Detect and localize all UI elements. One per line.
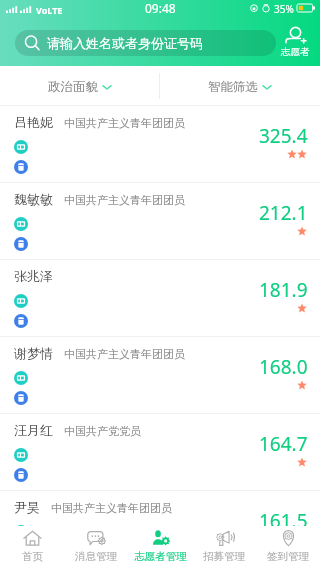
staticText: 请输入姓名或者身份证号码 bbox=[47, 35, 203, 51]
staticText: 164.7 bbox=[259, 431, 308, 457]
button[interactable]: 政治面貌 bbox=[0, 67, 159, 106]
staticText: 中国共产党党员 bbox=[64, 424, 141, 438]
staticText: 招募管理 bbox=[203, 550, 245, 563]
button[interactable]: 魏敏敏 bbox=[0, 183, 320, 260]
staticText: 汪月红 bbox=[14, 422, 53, 438]
staticText: 中国共产主义青年团团员 bbox=[64, 193, 185, 207]
button[interactable]: 吕艳妮 bbox=[0, 106, 320, 183]
button[interactable]: 张兆泽 bbox=[0, 260, 320, 337]
staticText: 志愿者 bbox=[281, 46, 310, 58]
staticText: 181.9 bbox=[259, 277, 308, 303]
button[interactable]: 谢梦情 bbox=[0, 337, 320, 414]
staticText: 签到管理 bbox=[267, 550, 309, 563]
staticText: 09:48 bbox=[145, 0, 176, 16]
staticText: 吕艳妮 bbox=[14, 114, 53, 130]
staticText: 智能筛选 bbox=[208, 79, 258, 95]
staticText: 212.1 bbox=[259, 200, 308, 226]
staticText: 325.4 bbox=[259, 123, 308, 149]
staticText: 161.5 bbox=[259, 508, 308, 534]
staticText: 政治面貌 bbox=[48, 79, 98, 95]
staticText: 中国共产主义青年团团员 bbox=[64, 347, 185, 361]
staticText: 张兆泽 bbox=[14, 268, 53, 284]
button[interactable]: 请输入姓名或者身份证号码 bbox=[15, 30, 276, 56]
staticText: 中国共产主义青年团团员 bbox=[51, 501, 172, 515]
staticText: 谢梦情 bbox=[14, 345, 53, 361]
staticText: VoLTE bbox=[36, 4, 63, 16]
button[interactable]: 尹昊 bbox=[0, 491, 320, 568]
staticText: 首页 bbox=[22, 550, 43, 563]
button[interactable]: 签到管理 bbox=[256, 526, 320, 569]
button[interactable]: 首页 bbox=[0, 526, 64, 569]
staticText: 志愿者管理 bbox=[134, 550, 187, 563]
button[interactable]: 添加志愿者 bbox=[271, 28, 320, 58]
staticText: 尹昊 bbox=[14, 499, 40, 515]
staticText: 消息管理 bbox=[75, 550, 117, 563]
button[interactable]: 智能筛选 bbox=[160, 67, 320, 106]
button[interactable]: 消息管理 bbox=[64, 526, 128, 569]
button[interactable]: 汪月红 bbox=[0, 414, 320, 491]
staticText: 中国共产主义青年团团员 bbox=[64, 116, 185, 130]
staticText: 魏敏敏 bbox=[14, 191, 53, 207]
staticText: 35% bbox=[274, 2, 294, 16]
staticText: 168.0 bbox=[259, 354, 308, 380]
button[interactable]: 志愿者管理 bbox=[128, 526, 192, 569]
button[interactable]: 招募管理 bbox=[192, 526, 256, 569]
